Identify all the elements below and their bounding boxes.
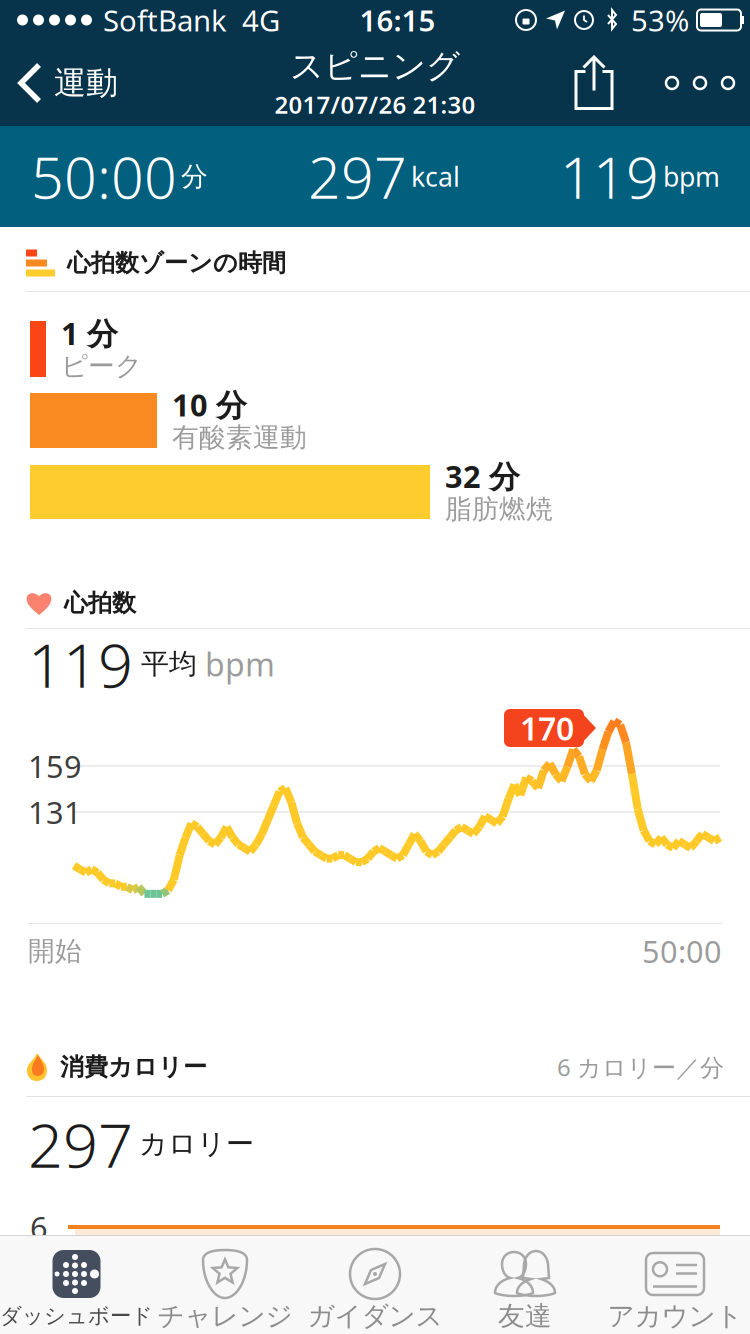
staticText: 消費カロリー bbox=[60, 1052, 207, 1082]
staticText: 脂肪燃焼 bbox=[445, 493, 553, 525]
staticText: 1 分 bbox=[61, 313, 118, 353]
staticText: 50:00 bbox=[31, 138, 177, 214]
staticText: 297 bbox=[308, 138, 407, 214]
staticText: チャレンジ bbox=[157, 1300, 292, 1332]
staticText: ガイダンス bbox=[307, 1300, 442, 1332]
staticText: 運動 bbox=[54, 63, 118, 103]
staticText: bpm bbox=[205, 643, 275, 685]
staticText: 10 分 bbox=[172, 384, 247, 425]
staticText: アカウント bbox=[607, 1300, 742, 1332]
staticText: 4G bbox=[242, 0, 280, 39]
staticText: 平均 bbox=[141, 647, 197, 681]
staticText: 開始 bbox=[28, 935, 82, 967]
staticText: 297 bbox=[28, 1103, 133, 1185]
staticText: 友達 bbox=[498, 1300, 552, 1332]
staticText: 16:15 bbox=[359, 0, 435, 39]
staticText: 119 bbox=[560, 138, 659, 214]
staticText: kcal bbox=[411, 159, 460, 194]
button[interactable]: 運動 bbox=[0, 40, 132, 126]
staticText: 119 bbox=[28, 623, 133, 705]
staticText: スピニング bbox=[290, 46, 460, 86]
staticText: 有酸素運動 bbox=[172, 421, 307, 454]
staticText: SoftBank bbox=[103, 0, 227, 39]
button[interactable]: ガイダンス bbox=[300, 1236, 450, 1334]
button[interactable]: 友達 bbox=[450, 1236, 600, 1334]
button[interactable]: ダッシュボード bbox=[0, 1236, 150, 1334]
staticText: ピーク bbox=[61, 350, 142, 382]
staticText: bpm bbox=[663, 159, 720, 194]
staticText: 2017/07/26 21:30 bbox=[274, 88, 475, 120]
staticText: 131 bbox=[28, 792, 82, 832]
staticText: 6 カロリー／分 bbox=[557, 1051, 724, 1083]
staticText: ダッシュボード bbox=[0, 1303, 153, 1329]
button[interactable]: その他 bbox=[650, 40, 750, 126]
staticText: カロリー bbox=[139, 1127, 254, 1161]
staticText: 心拍数 bbox=[64, 588, 136, 618]
staticText: 159 bbox=[28, 746, 82, 786]
staticText: 心拍数ゾーンの時間 bbox=[67, 248, 286, 278]
staticText: 50:00 bbox=[642, 931, 722, 971]
staticText: 6 bbox=[30, 1207, 48, 1247]
staticText: 170 bbox=[520, 707, 574, 749]
staticText: 分 bbox=[181, 160, 208, 193]
button[interactable]: チャレンジ bbox=[150, 1236, 300, 1334]
button[interactable]: 共有 bbox=[538, 40, 650, 126]
staticText: 32 分 bbox=[445, 456, 520, 496]
button[interactable]: アカウント bbox=[600, 1236, 750, 1334]
staticText: 53% bbox=[631, 0, 689, 39]
